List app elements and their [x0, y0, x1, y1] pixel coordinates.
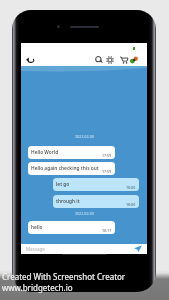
staticText: 18:00	[126, 185, 136, 190]
staticText: Hello again checking this out	[31, 165, 99, 172]
staticText: Hello World	[31, 149, 59, 156]
button[interactable]: hello	[28, 221, 115, 234]
button[interactable]: let go	[53, 178, 139, 191]
staticText: 10:17	[102, 228, 112, 233]
staticText: 18:00	[126, 202, 136, 207]
button[interactable]: Messages	[93, 54, 105, 66]
staticText: 17:59	[102, 169, 112, 174]
button[interactable]: Hello again checking this out	[28, 162, 115, 175]
staticText: through it	[56, 198, 80, 205]
button[interactable]: through it	[53, 195, 139, 208]
button[interactable]: Cart	[118, 54, 130, 66]
staticText: hello	[31, 224, 43, 231]
staticText: 17:59	[102, 153, 112, 158]
button[interactable]: Hello World	[28, 146, 115, 159]
staticText: let go	[56, 181, 70, 188]
button[interactable]: Back	[24, 54, 36, 66]
staticText: Created With Screenshot Creator	[2, 271, 126, 282]
button[interactable]: Profile	[128, 54, 140, 66]
staticText: 2022-02-08	[75, 134, 94, 139]
staticText: Message	[26, 246, 45, 252]
staticText: 2022-02-09	[75, 211, 94, 216]
button[interactable]: Settings	[104, 54, 116, 66]
button[interactable]: Send	[133, 244, 143, 254]
staticText: www.bridgetech.io	[2, 282, 73, 293]
